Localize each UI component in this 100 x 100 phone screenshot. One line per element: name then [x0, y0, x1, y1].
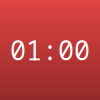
staticText: 01:00	[10, 32, 90, 68]
